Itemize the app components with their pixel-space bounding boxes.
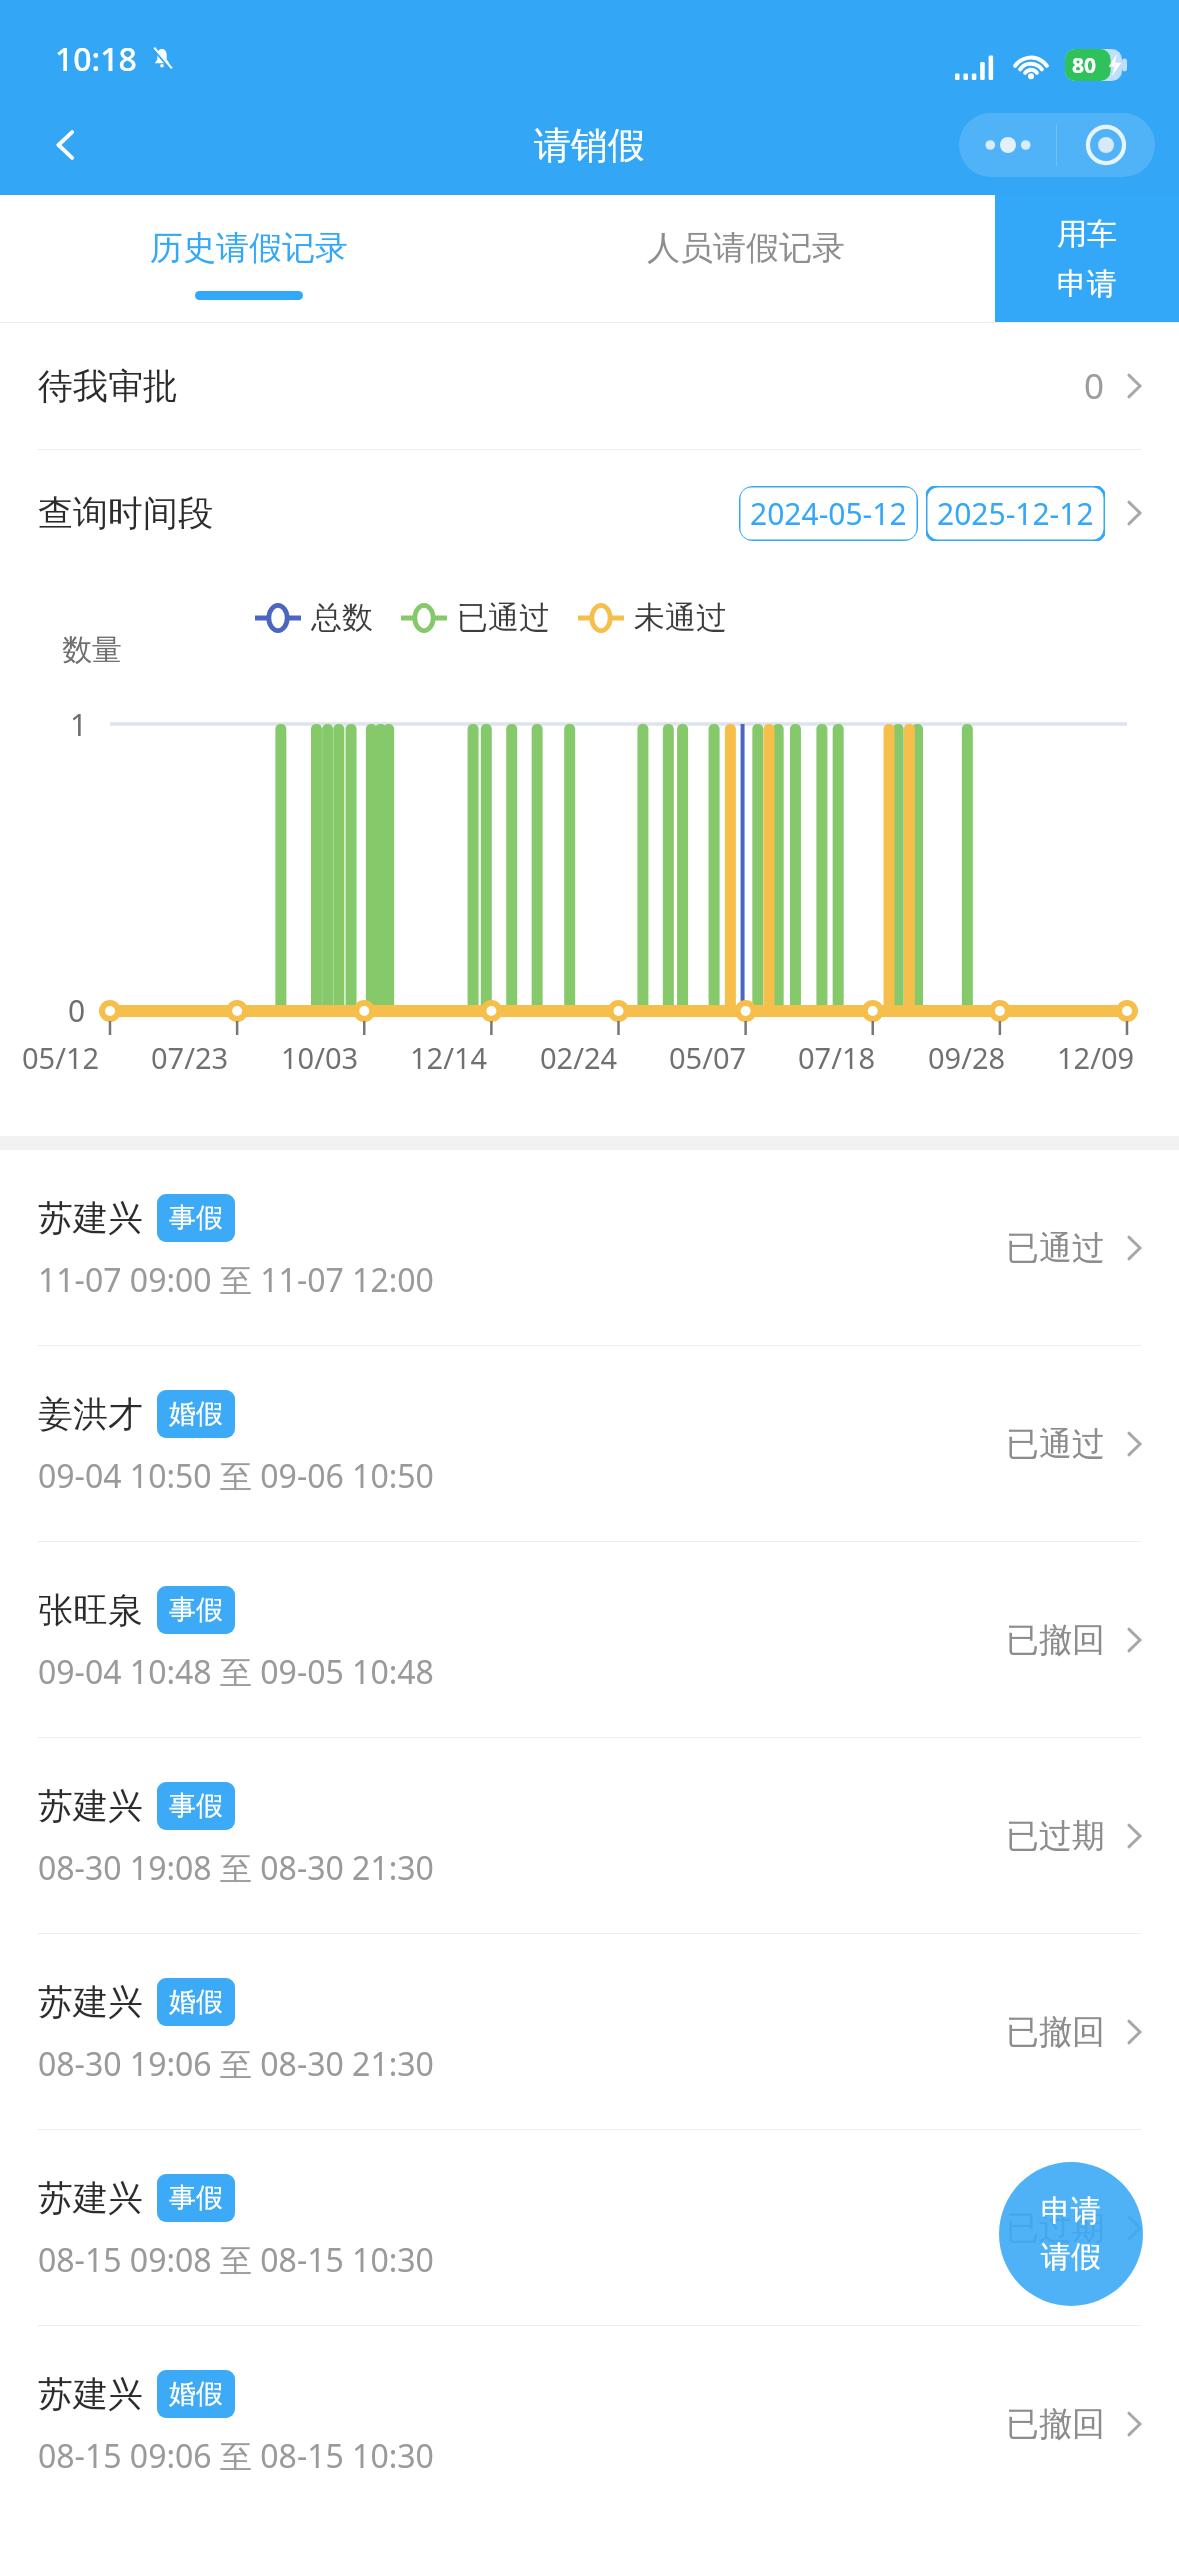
staticText: 姜洪才 — [38, 1392, 143, 1436]
staticText: 事假 — [169, 1789, 223, 1823]
button[interactable]: 关闭 — [1057, 113, 1155, 177]
staticText: 张旺泉 — [38, 1588, 143, 1632]
button[interactable]: 历史请假记录 — [0, 195, 497, 323]
staticText: 事假 — [169, 1593, 223, 1627]
staticText: 12/14 — [410, 1038, 522, 1077]
button[interactable]: 返回 — [28, 107, 104, 183]
staticText: 人员请假记录 — [647, 227, 845, 269]
staticText: 总数 — [311, 598, 373, 637]
staticText: 已通过 — [457, 598, 550, 637]
staticText: 婚假 — [169, 1985, 223, 2019]
staticText: 查询时间段 — [38, 491, 213, 535]
button[interactable]: 更多 — [959, 113, 1056, 177]
staticText: 0 — [68, 990, 86, 1031]
button[interactable]: 申请 — [999, 2162, 1143, 2306]
staticText: 05/12 — [22, 1038, 134, 1077]
staticText: 07/23 — [151, 1038, 263, 1077]
staticText: 12/09 — [1057, 1038, 1169, 1077]
button[interactable]: 查询时间段 — [0, 450, 1179, 576]
staticText: 08-15 09:06 至 08-15 10:30 — [38, 2434, 434, 2478]
staticText: 08-30 19:06 至 08-30 21:30 — [38, 2042, 434, 2086]
staticText: 已通过 — [1006, 1227, 1105, 1269]
button[interactable]: 苏建兴 — [0, 1150, 1179, 1345]
button[interactable]: 苏建兴 — [0, 1934, 1179, 2129]
button[interactable]: 姜洪才 — [0, 1346, 1179, 1541]
staticText: 事假 — [169, 2181, 223, 2215]
staticText: 80 — [1072, 51, 1097, 80]
staticText: 08-15 09:08 至 08-15 10:30 — [38, 2238, 434, 2282]
button[interactable]: 2025-12-12 — [926, 486, 1105, 541]
staticText: 婚假 — [169, 1397, 223, 1431]
staticText: 请假 — [1041, 2238, 1101, 2276]
staticText: 已通过 — [1006, 1423, 1105, 1465]
staticText: 申请 — [1041, 2192, 1101, 2230]
staticText: 事假 — [169, 1201, 223, 1235]
button[interactable]: 待我审批 — [0, 323, 1179, 449]
staticText: 09-04 10:48 至 09-05 10:48 — [38, 1650, 434, 1694]
staticText: 历史请假记录 — [150, 227, 348, 269]
staticText: 2025-12-12 — [937, 493, 1094, 534]
button[interactable]: 人员请假记录 — [497, 195, 995, 323]
staticText: 苏建兴 — [38, 1196, 143, 1240]
staticText: 苏建兴 — [38, 1980, 143, 2024]
staticText: 用车 — [1057, 215, 1117, 253]
button[interactable]: 苏建兴 — [0, 2130, 1179, 2325]
button[interactable]: 2024-05-12 — [739, 486, 918, 541]
staticText: 09/28 — [928, 1038, 1040, 1077]
staticText: 07/18 — [798, 1038, 910, 1077]
staticText: 09-04 10:50 至 09-06 10:50 — [38, 1454, 434, 1498]
button[interactable]: 用车 — [995, 195, 1179, 323]
staticText: 0 — [1084, 362, 1105, 410]
button[interactable]: 张旺泉 — [0, 1542, 1179, 1737]
staticText: 02/24 — [540, 1038, 652, 1077]
staticText: 婚假 — [169, 2377, 223, 2411]
staticText: 苏建兴 — [38, 1784, 143, 1828]
staticText: 已撤回 — [1006, 1619, 1105, 1661]
staticText: 2024-05-12 — [750, 493, 907, 534]
staticText: 待我审批 — [38, 364, 178, 408]
staticText: 10/03 — [281, 1038, 393, 1077]
staticText: 11-07 09:00 至 11-07 12:00 — [38, 1258, 434, 1302]
staticText: 苏建兴 — [38, 2372, 143, 2416]
button[interactable]: 苏建兴 — [0, 2326, 1179, 2521]
staticText: 1 — [70, 704, 88, 745]
button[interactable]: 苏建兴 — [0, 1738, 1179, 1933]
staticText: 请销假 — [534, 122, 645, 169]
staticText: 申请 — [1057, 265, 1117, 303]
staticText: 已撤回 — [1006, 2403, 1105, 2445]
staticText: 已过期 — [1006, 1815, 1105, 1857]
staticText: 05/07 — [669, 1038, 781, 1077]
staticText: 08-30 19:08 至 08-30 21:30 — [38, 1846, 434, 1890]
staticText: 数量 — [62, 631, 122, 669]
staticText: 已过期 — [1006, 2207, 1105, 2249]
staticText: 未通过 — [634, 598, 727, 637]
staticText: 10:18 — [55, 37, 137, 81]
staticText: 苏建兴 — [38, 2176, 143, 2220]
staticText: 已撤回 — [1006, 2011, 1105, 2053]
